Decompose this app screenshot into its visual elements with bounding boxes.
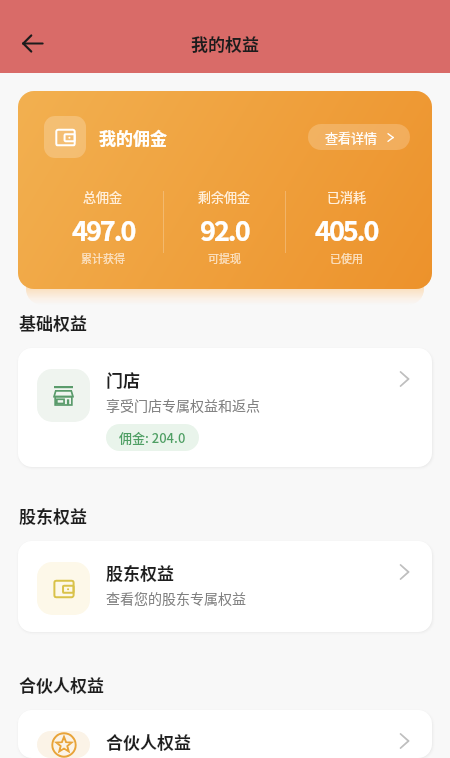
staticText: 405.0 (315, 210, 378, 249)
staticText: 已消耗 (327, 187, 367, 206)
staticText: 股东权益 (106, 560, 174, 585)
button[interactable]: 门店 (18, 348, 432, 467)
staticText: 总佣金 (83, 187, 123, 206)
staticText: 合伙人权益 (106, 729, 191, 754)
staticText: 可提现 (208, 250, 241, 266)
staticText: 已使用 (330, 250, 363, 266)
staticText: 查看您的股东专属权益 (106, 588, 246, 608)
staticText: 查看详情 (325, 128, 378, 147)
staticText: 合伙人权益 (19, 672, 104, 697)
staticText: 享受门店专属权益和返点 (106, 395, 260, 415)
staticText: 我的权益 (191, 31, 259, 56)
other: Open 股东权益 (396, 564, 412, 580)
staticText: 门店 (106, 367, 140, 392)
staticText: 我的佣金 (99, 125, 167, 150)
staticText: 累计获得 (81, 250, 125, 266)
other: Open 门店 (396, 371, 412, 387)
staticText: 92.0 (200, 210, 249, 249)
other: Open 合伙人权益 (396, 733, 412, 749)
staticText: 佣金: 204.0 (119, 428, 186, 447)
staticText: 基础权益 (19, 310, 87, 335)
staticText: 497.0 (72, 210, 135, 249)
button[interactable]: 股东权益 (18, 541, 432, 632)
button[interactable]: Back (10, 21, 54, 65)
staticText: 剩余佣金 (198, 187, 251, 206)
button[interactable]: 我的佣金 (18, 91, 432, 289)
button[interactable]: 合伙人权益 (18, 710, 432, 758)
staticText: 股东权益 (19, 503, 87, 528)
button[interactable]: 查看详情 (308, 124, 410, 150)
